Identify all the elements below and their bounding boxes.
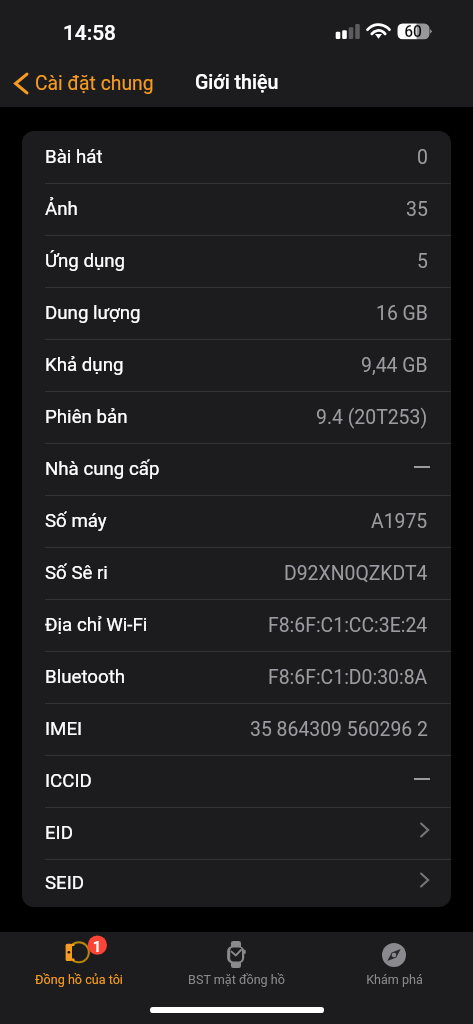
staticText: Giới thiệu	[195, 71, 279, 94]
button[interactable]: Cài đặt chung	[9, 70, 160, 97]
staticText: 35	[406, 198, 428, 221]
button[interactable]: BST mặt đồng hồ	[157, 939, 315, 991]
staticText: 9,44 GB	[361, 354, 428, 377]
staticText: 16 GB	[376, 302, 428, 325]
staticText: F8:6F:C1:CC:3E:24	[268, 614, 428, 637]
staticText: A1975	[371, 510, 428, 533]
other: Đồng hồ của tôi	[56, 939, 102, 970]
staticText: F8:6F:C1:D0:30:8A	[268, 666, 428, 689]
staticText: Khả dụng	[45, 354, 124, 376]
staticText: BST mặt đồng hồ	[188, 972, 285, 987]
staticText: D92XN0QZKDT4	[284, 562, 428, 585]
button[interactable]: Số Sê ri	[22, 547, 451, 599]
staticText: 9.4 (20T253)	[316, 406, 428, 429]
button[interactable]: IMEI	[22, 703, 451, 755]
staticText: 1	[91, 938, 103, 956]
button[interactable]: SEID	[22, 859, 451, 907]
button[interactable]: Ứng dụng	[22, 235, 451, 287]
button[interactable]: Nhà cung cấp	[22, 443, 451, 495]
staticText: Số máy	[45, 510, 107, 532]
staticText: IMEI	[45, 718, 83, 740]
staticText: 0	[417, 146, 428, 169]
staticText: 14:58	[63, 21, 116, 45]
button[interactable]: Phiên bản	[22, 391, 451, 443]
other: Khám phá	[382, 943, 406, 967]
button[interactable]: Địa chỉ Wi-Fi	[22, 599, 451, 651]
staticText: 35 864309 560296 2	[250, 718, 428, 741]
button[interactable]: Dung lượng	[22, 287, 451, 339]
staticText: Đồng hồ của tôi	[35, 972, 123, 987]
staticText: Cài đặt chung	[35, 72, 154, 95]
button[interactable]: Đồng hồ của tôi	[0, 939, 157, 991]
staticText: 60	[397, 23, 429, 41]
button[interactable]: Số máy	[22, 495, 451, 547]
staticText: Nhà cung cấp	[45, 458, 160, 480]
button[interactable]: EID	[22, 807, 451, 859]
staticText: Ứng dụng	[45, 250, 126, 272]
button[interactable]: Bluetooth	[22, 651, 451, 703]
staticText: Số Sê ri	[45, 562, 108, 584]
staticText: SEID	[45, 872, 85, 894]
button[interactable]: Khả dụng	[22, 339, 451, 391]
staticText: Địa chỉ Wi-Fi	[45, 614, 148, 636]
staticText: Phiên bản	[45, 406, 128, 428]
button[interactable]: Ảnh	[22, 183, 451, 235]
staticText: EID	[45, 822, 73, 844]
staticText: Dung lượng	[45, 302, 141, 324]
staticText: Ảnh	[45, 198, 78, 220]
staticText: Khám phá	[366, 972, 423, 987]
staticText: ICCID	[45, 770, 92, 792]
button[interactable]: ICCID	[22, 755, 451, 807]
button[interactable]: Bài hát	[22, 131, 451, 183]
button[interactable]: Khám phá	[315, 939, 473, 991]
staticText: Bluetooth	[45, 666, 126, 688]
staticText: 5	[417, 250, 428, 273]
staticText: Bài hát	[45, 146, 103, 168]
other: BST mặt đồng hồ	[227, 940, 246, 969]
